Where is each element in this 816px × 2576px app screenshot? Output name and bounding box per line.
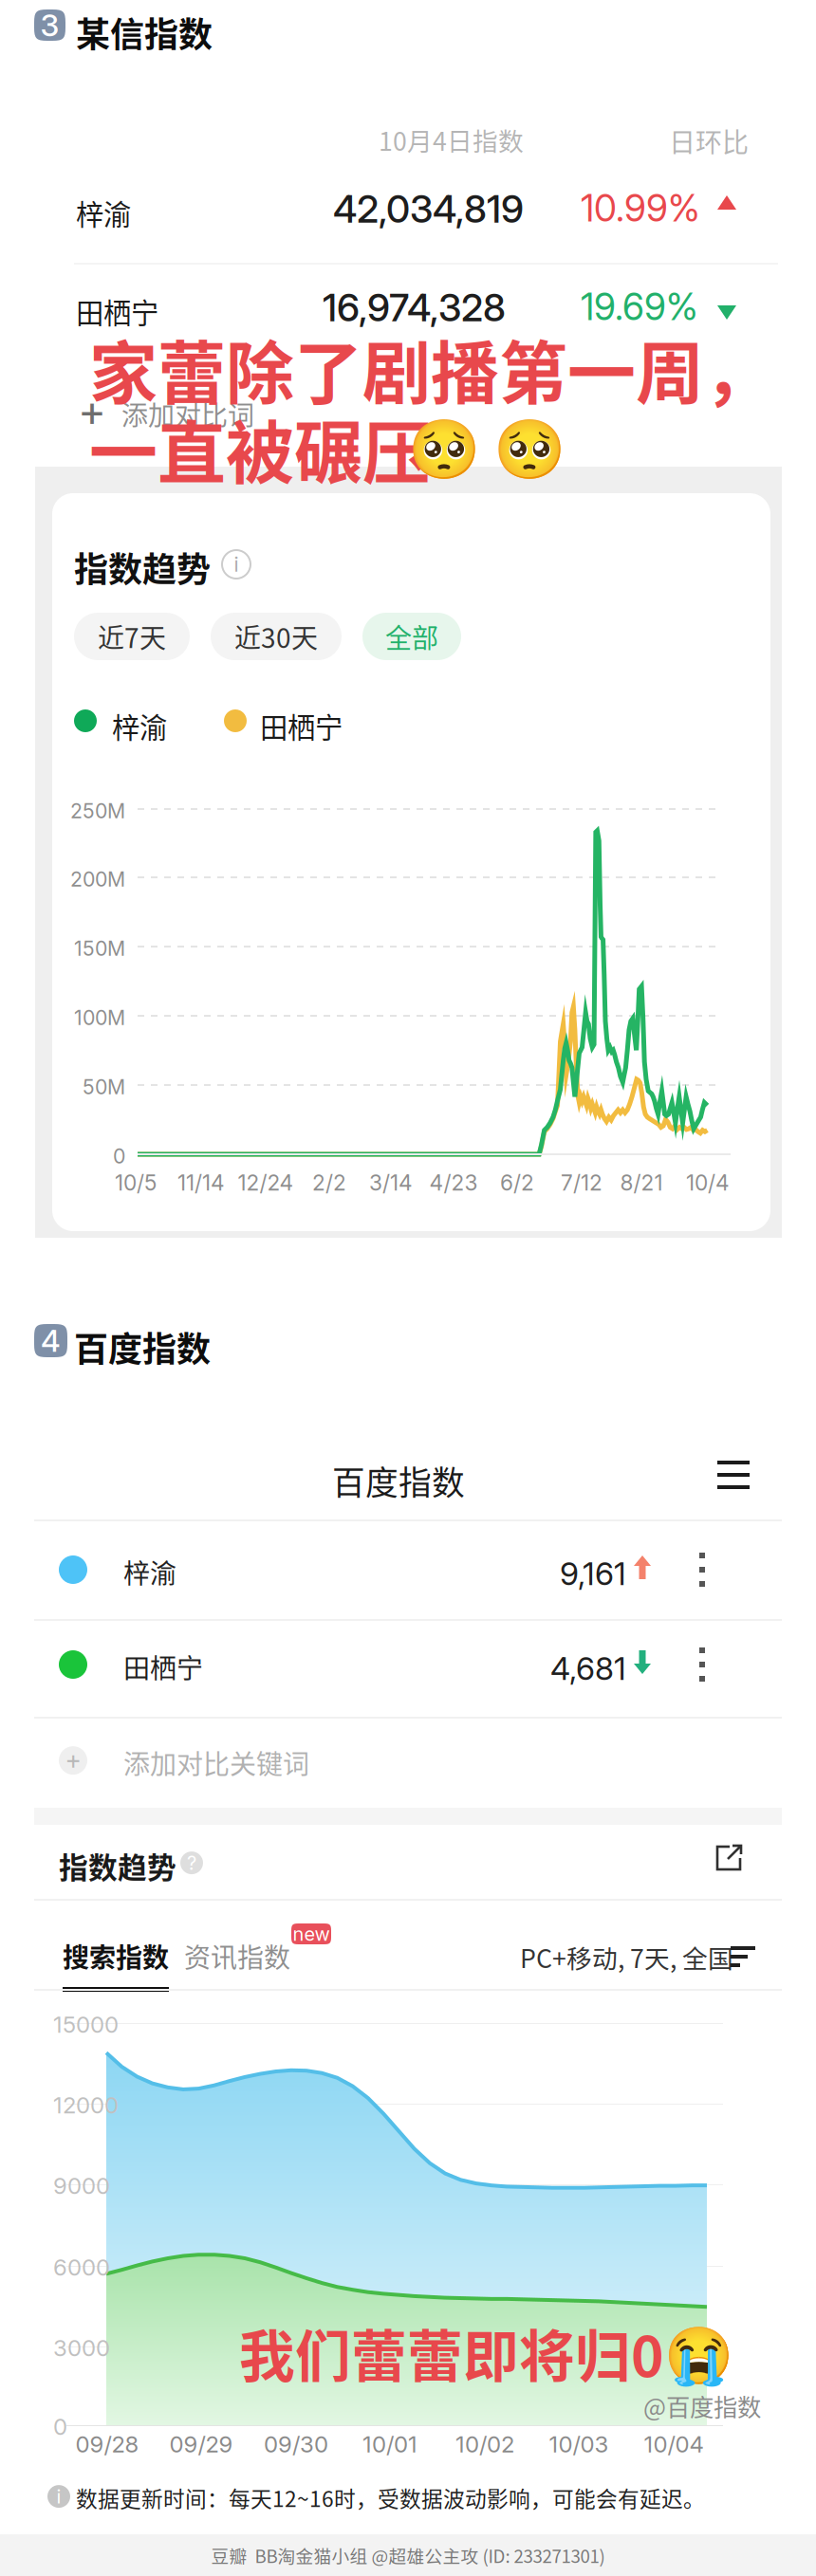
staticText: 0 (113, 1144, 125, 1168)
staticText: 3000 (53, 2334, 110, 2362)
staticText: 10/04 (644, 2430, 704, 2458)
staticText: 百度指数 (74, 1322, 211, 1372)
staticText: 梓渝 (123, 1553, 176, 1591)
staticText: 近7天 (98, 617, 166, 656)
staticText: 3 (40, 7, 59, 43)
staticText: 2/2 (312, 1170, 346, 1196)
staticText: 6000 (53, 2254, 110, 2281)
staticText: 3/14 (369, 1170, 413, 1196)
staticText: 09/29 (169, 2430, 233, 2458)
staticText: 19.69% (581, 285, 698, 329)
staticText: 10/5 (115, 1170, 157, 1196)
staticText: 10/03 (549, 2430, 609, 2458)
staticText: 11/14 (177, 1170, 225, 1196)
staticText: 全部 (385, 617, 438, 656)
staticText: 12/24 (238, 1170, 294, 1196)
staticText: 田栖宁 (123, 1647, 203, 1686)
staticText: 200M (70, 867, 125, 891)
staticText: 0 (53, 2413, 67, 2440)
staticText: 近30天 (234, 617, 318, 656)
staticText: 添加对比关键词 (123, 1743, 309, 1782)
staticText: 4/23 (429, 1170, 478, 1196)
staticText: 4 (41, 1322, 61, 1359)
staticText: 6/2 (500, 1170, 534, 1196)
staticText: 指数趋势 (74, 543, 211, 592)
staticText: 10/01 (362, 2430, 417, 2458)
staticText: 9,161 (560, 1554, 626, 1593)
staticText: 某信指数 (76, 8, 213, 57)
staticText: 9000 (53, 2172, 110, 2199)
staticText: 资讯指数 (184, 1937, 290, 1975)
staticText: i (56, 2485, 61, 2508)
staticText: 田栖宁 (76, 291, 158, 331)
staticText: 16,974,328 (323, 285, 506, 330)
staticText: 梓渝 (76, 193, 131, 233)
staticText: 10月4日指数 (379, 121, 524, 158)
staticText: 09/28 (75, 2430, 139, 2458)
staticText: 8/21 (620, 1170, 663, 1196)
staticText: 搜索指数 (63, 1937, 169, 1975)
staticText: i (234, 552, 239, 577)
staticText: 百度指数 (332, 1457, 465, 1504)
staticText: 10.99% (581, 186, 700, 230)
staticText: 10/02 (455, 2430, 514, 2458)
staticText: 100M (74, 1005, 125, 1030)
staticText: 150M (74, 936, 125, 961)
staticText: 15000 (53, 2011, 119, 2038)
staticText: + (65, 1745, 81, 1776)
staticText: 10/4 (686, 1170, 730, 1196)
staticText: 一直被碾压 (89, 398, 431, 497)
staticText: 数据更新时间：每天12~16时，受数据波动影响，可能会有延迟。 (76, 2482, 705, 2513)
staticText: 50M (83, 1075, 125, 1099)
staticText: ? (187, 1851, 196, 1874)
staticText: 4,681 (550, 1649, 626, 1687)
staticText: @百度指数 (643, 2388, 761, 2423)
staticText: 日环比 (669, 121, 749, 160)
staticText: 梓渝 (112, 706, 167, 746)
staticText: 指数趋势 (59, 1845, 176, 1887)
staticText: 田栖宁 (260, 706, 343, 746)
staticText: 添加对比词 (121, 395, 254, 433)
staticText: 12000 (53, 2091, 119, 2119)
staticText: new (293, 1922, 330, 1945)
staticText: 7/12 (561, 1170, 603, 1196)
staticText: 42,034,819 (333, 186, 524, 232)
staticText: 🥺 🥺 (408, 402, 566, 486)
staticText: 豆瓣 BB淘金猫小组 @超雄公主攻 (ID: 233271301) (211, 2542, 605, 2568)
staticText: 09/30 (264, 2430, 328, 2458)
staticText: 我们蕾蕾即将归0😭 (239, 2312, 733, 2393)
staticText: 家蕾除了剧播第一周， (89, 319, 772, 418)
staticText: PC+移动, 7天, 全国 (520, 1939, 733, 1975)
staticText: 250M (70, 799, 125, 823)
staticText: + (78, 384, 106, 436)
